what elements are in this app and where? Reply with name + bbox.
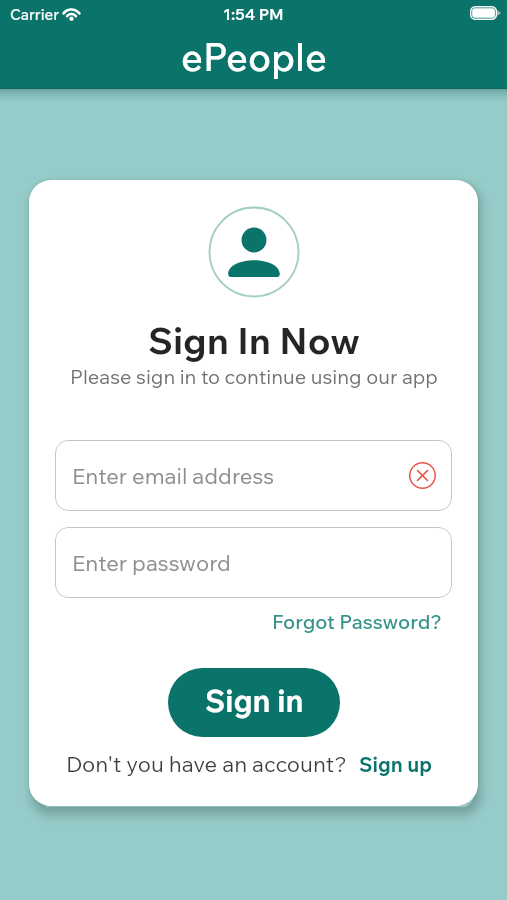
button[interactable]: Sign up: [359, 752, 432, 777]
staticText: Don't you have an account?: [66, 750, 347, 778]
button[interactable]: Forgot Password?: [272, 609, 442, 634]
staticText: Please sign in to continue using our app: [70, 364, 438, 389]
button[interactable]: Clear email address: [409, 462, 436, 489]
staticText: Carrier: [10, 5, 59, 24]
staticText: ePeople: [181, 33, 327, 81]
button[interactable]: Enter email address: [55, 440, 452, 511]
staticText: Sign in: [205, 682, 304, 720]
button[interactable]: Enter password: [55, 527, 452, 598]
staticText: 1:54 PM: [223, 4, 284, 24]
button[interactable]: Sign in: [168, 668, 340, 737]
staticText: Sign In Now: [148, 317, 360, 364]
staticText: Enter email address: [72, 462, 275, 490]
staticText: Enter password: [72, 549, 231, 577]
